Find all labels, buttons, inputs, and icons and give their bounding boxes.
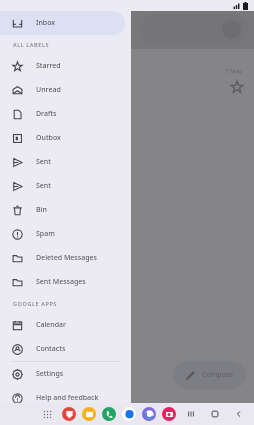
button[interactable]: Phone bbox=[102, 407, 116, 421]
staticText: Drafts bbox=[36, 109, 57, 119]
button[interactable]: Photos bbox=[162, 407, 176, 421]
button[interactable]: Recents bbox=[179, 403, 203, 425]
button[interactable]: Sent Messages bbox=[0, 270, 125, 294]
staticText: Outbox bbox=[36, 133, 61, 143]
button[interactable]: Back bbox=[227, 403, 251, 425]
button[interactable]: Starred bbox=[0, 54, 125, 78]
button[interactable]: Spam bbox=[0, 222, 125, 246]
staticText: Sent bbox=[36, 157, 51, 167]
staticText: Starred bbox=[36, 61, 61, 71]
staticText: Unread bbox=[36, 85, 61, 95]
button[interactable]: Keep bbox=[62, 407, 76, 421]
staticText: Sent bbox=[36, 181, 51, 191]
staticText: Spam bbox=[36, 229, 55, 239]
button[interactable]: Files bbox=[82, 407, 96, 421]
staticText: Sent Messages bbox=[36, 277, 86, 287]
button[interactable]: Help and feedback bbox=[0, 386, 125, 410]
button[interactable]: Sent bbox=[0, 150, 125, 174]
button[interactable]: Calendar bbox=[0, 313, 125, 337]
button[interactable]: Settings bbox=[0, 362, 125, 386]
staticText: ALL LABELS bbox=[13, 41, 50, 48]
staticText: Bin bbox=[36, 205, 47, 215]
button[interactable]: All apps bbox=[42, 409, 53, 420]
button[interactable]: Sent bbox=[0, 174, 125, 198]
button[interactable]: Inbox bbox=[0, 11, 125, 35]
button[interactable]: Home bbox=[203, 403, 227, 425]
button[interactable]: Outbox bbox=[0, 126, 125, 150]
staticText: GOOGLE APPS bbox=[13, 300, 57, 307]
staticText: Inbox bbox=[36, 18, 56, 28]
staticText: 7 May bbox=[225, 67, 242, 75]
button[interactable]: Drafts bbox=[0, 102, 125, 126]
button[interactable]: Browser bbox=[142, 407, 156, 421]
staticText: Help and feedback bbox=[36, 393, 99, 403]
button[interactable]: Messages bbox=[122, 407, 136, 421]
button[interactable]: Unread bbox=[0, 78, 125, 102]
button[interactable]: Bin bbox=[0, 198, 125, 222]
button[interactable]: Deleted Messages bbox=[0, 246, 125, 270]
staticText: Contacts bbox=[36, 344, 66, 354]
staticText: Deleted Messages bbox=[36, 253, 97, 263]
staticText: Calendar bbox=[36, 320, 67, 330]
staticText: Settings bbox=[36, 369, 64, 379]
staticText: Compose bbox=[202, 370, 234, 380]
button[interactable]: Compose bbox=[173, 361, 246, 389]
button[interactable]: Contacts bbox=[0, 337, 125, 361]
